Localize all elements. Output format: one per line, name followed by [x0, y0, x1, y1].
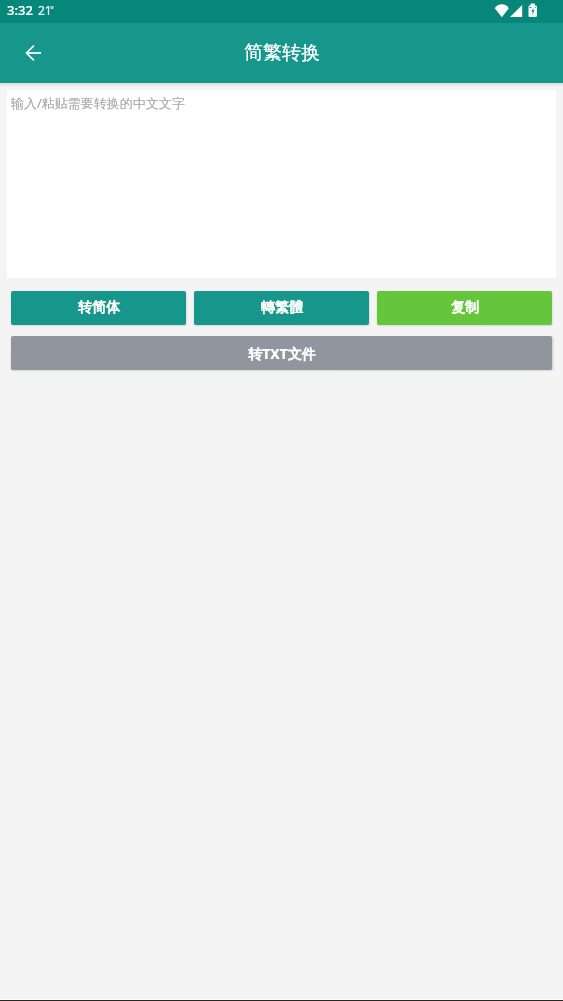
- button[interactable]: 轉繁體: [194, 291, 369, 325]
- staticText: 21: [38, 2, 52, 18]
- button[interactable]: 复制: [377, 291, 552, 325]
- staticText: 转简体: [78, 299, 120, 317]
- staticText: 3:32: [7, 1, 33, 19]
- button[interactable]: 输入/粘贴需要转换的中文文字: [7, 90, 556, 278]
- staticText: 轉繁體: [261, 299, 303, 317]
- button[interactable]: Back: [12, 31, 56, 75]
- staticText: 复制: [451, 299, 479, 317]
- button[interactable]: 转简体: [11, 291, 186, 325]
- staticText: 简繁转换: [244, 41, 320, 65]
- staticText: 输入/粘贴需要转换的中文文字: [11, 94, 185, 112]
- staticText: °: [50, 3, 54, 15]
- staticText: 转TXT文件: [248, 344, 316, 363]
- button[interactable]: 转TXT文件: [11, 336, 552, 370]
